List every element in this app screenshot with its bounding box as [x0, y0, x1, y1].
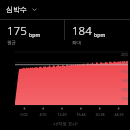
staticText: bpm	[29, 31, 41, 38]
staticText: 160	[121, 69, 128, 74]
staticText: 심박수	[6, 5, 27, 14]
staticText: 4:55	[39, 112, 47, 117]
staticText: bpm	[94, 31, 106, 38]
staticText: 0:00	[20, 112, 28, 117]
staticText: 184	[72, 23, 92, 39]
staticText: 200	[121, 52, 128, 57]
staticText: 120	[121, 87, 128, 92]
staticText: 20:38	[95, 112, 105, 117]
staticText: 100	[121, 96, 128, 101]
button[interactable]: 심박수	[0, 0, 130, 19]
staticText: 최대	[72, 40, 82, 46]
button[interactable]: 184	[65, 20, 130, 46]
staticText: 140	[121, 78, 128, 83]
staticText: 12:49	[57, 112, 67, 117]
staticText: 평균	[7, 40, 17, 46]
staticText: 175	[7, 23, 27, 39]
staticText: 시(자정 표시)	[53, 121, 78, 127]
other: Change metric	[31, 6, 38, 13]
staticText: 180	[121, 60, 128, 65]
staticText: 16:44	[76, 112, 86, 117]
button[interactable]: 175	[0, 20, 64, 46]
staticText: 44:33	[114, 112, 124, 117]
